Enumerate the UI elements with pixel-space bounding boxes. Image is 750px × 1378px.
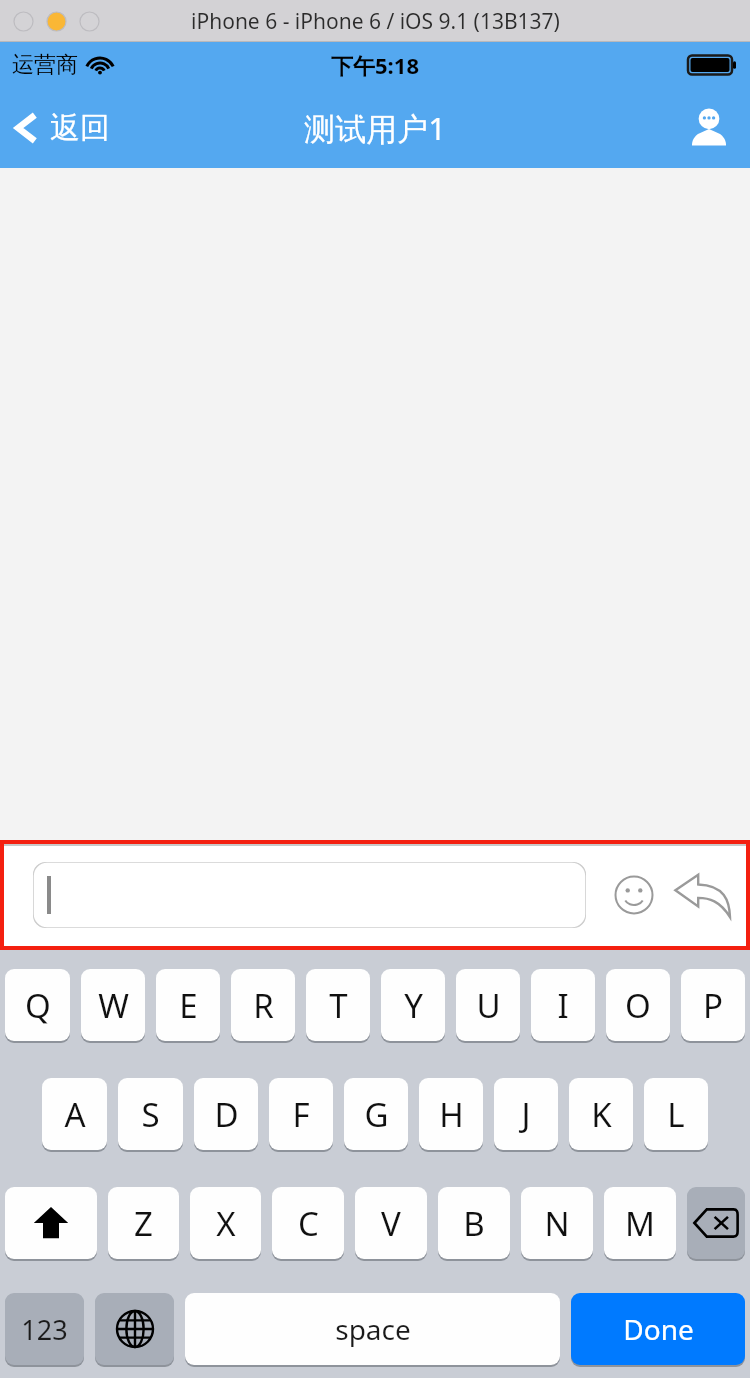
button[interactable]: E [156,969,220,1041]
button[interactable]: Send [670,862,736,928]
staticText: N [544,1201,570,1246]
button[interactable]: W [81,969,145,1041]
button[interactable]: I [531,969,595,1041]
button[interactable]: P [681,969,745,1041]
button[interactable]: J [494,1078,558,1150]
button[interactable]: Emoji [612,873,656,917]
button[interactable]: L [644,1078,708,1150]
button[interactable]: C [272,1187,344,1259]
staticText: iPhone 6 - iPhone 6 / iOS 9.1 (13B137) [191,7,560,36]
button[interactable]: O [606,969,670,1041]
staticText: P [703,983,723,1028]
button[interactable] [33,862,586,928]
button[interactable]: Y [381,969,445,1041]
staticText: space [335,1310,411,1348]
staticText: W [98,983,129,1028]
button[interactable]: Done [571,1293,745,1365]
button[interactable]: Q [5,969,70,1041]
staticText: B [463,1201,485,1246]
button[interactable]: B [438,1187,510,1259]
button[interactable]: Shift [5,1187,97,1259]
staticText: U [476,983,501,1028]
button[interactable]: N [521,1187,593,1259]
button[interactable]: Backspace [687,1187,745,1259]
staticText: 下午5:18 [331,50,419,80]
staticText: J [521,1092,531,1137]
button[interactable]: U [456,969,520,1041]
staticText: G [364,1092,389,1137]
button[interactable]: G [344,1078,408,1150]
button[interactable]: Switch keyboard [95,1293,174,1365]
button[interactable]: 123 [5,1293,84,1365]
staticText: Y [404,983,423,1028]
staticText: L [667,1092,685,1137]
staticText: S [141,1092,160,1137]
staticText: V [381,1201,401,1246]
staticText: F [292,1092,310,1137]
staticText: K [591,1092,612,1137]
button[interactable]: R [231,969,295,1041]
button[interactable]: 返回 [0,100,124,156]
staticText: I [557,983,569,1028]
staticText: E [179,983,198,1028]
button[interactable]: D [194,1078,258,1150]
button[interactable]: Window button [14,12,33,31]
button[interactable]: Z [108,1187,179,1259]
staticText: Q [25,983,51,1028]
button[interactable]: space [185,1293,560,1365]
staticText: M [625,1201,655,1246]
button[interactable]: A [42,1078,107,1150]
button[interactable]: Window button [80,12,99,31]
button[interactable]: X [190,1187,261,1259]
button[interactable]: H [419,1078,483,1150]
staticText: O [625,983,651,1028]
button[interactable]: Window button [47,12,66,31]
staticText: 返回 [50,109,110,147]
button[interactable]: M [604,1187,676,1259]
button[interactable]: T [306,969,370,1041]
staticText: Z [134,1201,153,1246]
button[interactable]: V [355,1187,427,1259]
button[interactable]: F [269,1078,333,1150]
staticText: H [439,1092,464,1137]
staticText: 测试用户1 [304,107,446,149]
staticText: X [216,1201,236,1246]
staticText: 123 [21,1311,68,1348]
staticText: R [253,983,274,1028]
button[interactable]: Contact info [686,105,750,151]
staticText: C [298,1201,319,1246]
button[interactable]: K [569,1078,633,1150]
staticText: 运营商 [12,51,78,79]
staticText: D [214,1092,239,1137]
staticText: Done [623,1310,694,1348]
button[interactable]: S [118,1078,183,1150]
staticText: T [329,983,348,1028]
staticText: A [64,1092,86,1137]
